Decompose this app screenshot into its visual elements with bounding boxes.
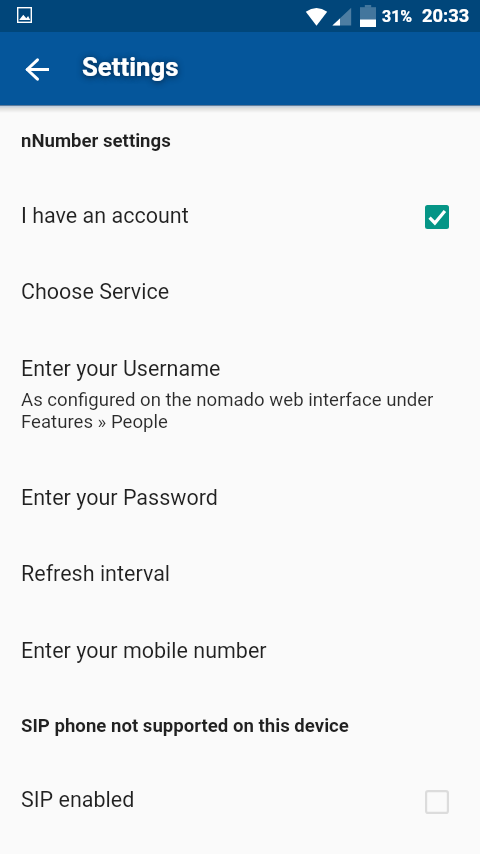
staticText: Settings [82, 52, 179, 82]
staticText: I have an account [21, 203, 189, 228]
button[interactable]: Enter your Username [0, 332, 480, 455]
staticText: Features » People [21, 411, 168, 433]
staticText: 20:33 [422, 5, 470, 26]
button[interactable]: Enter your mobile number [0, 614, 480, 691]
staticText: nNumber settings [21, 130, 171, 152]
button[interactable]: SIP enabled [0, 763, 480, 840]
button[interactable]: Refresh interval [0, 537, 480, 614]
staticText: SIP enabled [21, 787, 135, 812]
button[interactable]: Navigate up [13, 45, 61, 93]
staticText: As configured on the nomado web interfac… [21, 389, 434, 411]
staticText: Enter your Username [21, 356, 221, 381]
staticText: 31% [382, 7, 413, 26]
staticText: Choose Service [21, 279, 170, 304]
button[interactable]: Choose Service [0, 255, 480, 332]
staticText: Enter your mobile number [21, 638, 267, 663]
button[interactable]: Enter your Password [0, 460, 480, 537]
staticText: Refresh interval [21, 561, 171, 586]
staticText: SIP phone not supported on this device [21, 715, 349, 737]
staticText: Enter your Password [21, 485, 218, 510]
button[interactable]: I have an account [0, 178, 480, 255]
